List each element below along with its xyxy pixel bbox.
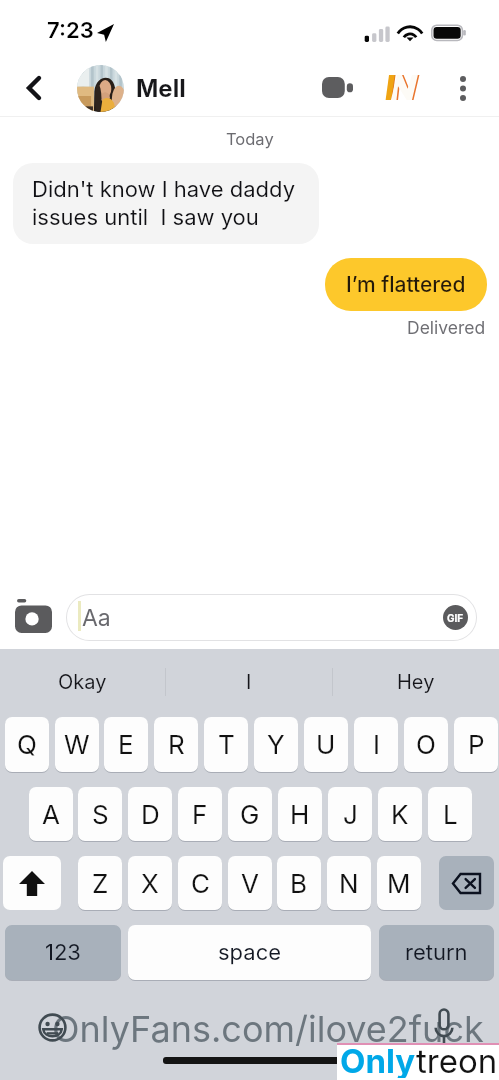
button[interactable]: Okay	[0, 649, 165, 715]
button[interactable]: Z	[78, 856, 122, 910]
button[interactable]: Aa	[66, 594, 477, 641]
staticText: Z	[92, 868, 109, 899]
staticText: B	[290, 868, 308, 899]
button[interactable]: O	[404, 717, 448, 772]
button[interactable]: Q	[5, 717, 49, 772]
staticText: Delivered	[407, 317, 486, 338]
button[interactable]: Y	[254, 717, 298, 772]
staticText: Today	[226, 129, 274, 149]
button[interactable]: T	[204, 717, 248, 772]
button[interactable]: More options	[441, 66, 485, 111]
button[interactable]: Shift	[3, 856, 61, 910]
button[interactable]: H	[278, 787, 322, 841]
button[interactable]: space	[128, 925, 371, 980]
staticText: Aa	[82, 604, 111, 632]
staticText: Only	[340, 1041, 416, 1078]
staticText: I	[373, 729, 380, 760]
button[interactable]: I	[166, 649, 332, 715]
button[interactable]: F	[178, 787, 222, 841]
button[interactable]: U	[304, 717, 348, 772]
staticText: K	[391, 799, 409, 830]
staticText: X	[141, 868, 159, 899]
staticText: OnlyFans.com/ilove2fuck	[52, 1007, 484, 1051]
staticText: Okay	[58, 670, 107, 694]
button[interactable]: R	[154, 717, 198, 772]
button[interactable]: Emoji	[38, 1013, 67, 1042]
staticText: E	[118, 729, 134, 760]
button[interactable]: I	[354, 717, 398, 772]
button[interactable]: Didn't know I have daddy issues until I …	[13, 163, 319, 244]
button[interactable]: C	[178, 856, 222, 910]
button[interactable]: X	[128, 856, 172, 910]
button[interactable]: G	[228, 787, 272, 841]
staticText: R	[168, 729, 185, 760]
staticText: V	[241, 868, 259, 899]
button[interactable]: E	[104, 717, 148, 772]
staticText: space	[218, 939, 282, 966]
staticText: Y	[267, 729, 285, 760]
staticText: I’m flattered	[346, 272, 466, 297]
button[interactable]: Instagram note	[376, 65, 424, 110]
button[interactable]: K	[378, 787, 422, 841]
staticText: Q	[17, 729, 37, 760]
button[interactable]: GIF	[443, 605, 468, 630]
button[interactable]: Back	[13, 64, 55, 111]
staticText: C	[191, 868, 210, 899]
button[interactable]: B	[277, 856, 321, 910]
button[interactable]: W	[55, 717, 99, 772]
staticText: N	[339, 868, 359, 899]
button[interactable]: S	[78, 787, 122, 841]
staticText: P	[468, 729, 485, 760]
button[interactable]: return	[379, 925, 494, 980]
button[interactable]: P	[454, 717, 498, 772]
button[interactable]: 123	[5, 925, 121, 980]
staticText: Didn't know I have daddy issues until I …	[32, 176, 296, 231]
button[interactable]: I’m flattered	[325, 258, 487, 311]
button[interactable]: Video call	[313, 65, 361, 110]
staticText: H	[290, 799, 310, 830]
button[interactable]: L	[428, 787, 472, 841]
staticText: treon	[416, 1041, 498, 1078]
staticText: return	[405, 939, 468, 966]
staticText: T	[218, 729, 235, 760]
staticText: O	[416, 729, 436, 760]
staticText: A	[42, 799, 60, 830]
button[interactable]: V	[228, 856, 272, 910]
staticText: Mell	[136, 74, 186, 103]
button[interactable]: Voice message	[433, 1008, 455, 1046]
staticText: W	[64, 729, 90, 760]
button[interactable]: A	[29, 787, 73, 841]
button[interactable]: D	[128, 787, 172, 841]
staticText: J	[343, 799, 358, 830]
staticText: G	[240, 799, 260, 830]
staticText: L	[443, 799, 458, 830]
staticText: U	[316, 729, 336, 760]
button[interactable]: N	[327, 856, 371, 910]
button[interactable]: Backspace	[439, 856, 494, 910]
button[interactable]: M	[377, 856, 421, 910]
button[interactable]: Camera	[13, 597, 54, 635]
button[interactable]: Hey	[333, 649, 499, 715]
staticText: F	[192, 799, 208, 830]
staticText: D	[141, 799, 160, 830]
staticText: 7:23	[47, 17, 94, 44]
staticText: 123	[45, 939, 81, 966]
staticText: S	[92, 799, 109, 830]
staticText: M	[387, 868, 411, 899]
staticText: GIF	[447, 612, 464, 624]
staticText: I	[246, 670, 252, 694]
staticText: Hey	[397, 670, 435, 694]
button[interactable]: J	[328, 787, 372, 841]
